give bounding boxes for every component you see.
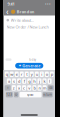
- staticText: v: [28, 85, 30, 90]
- button[interactable]: ⌫: [48, 85, 54, 91]
- staticText: ☺: [15, 93, 18, 96]
- staticText: h: [33, 78, 35, 84]
- button[interactable]: k: [42, 78, 46, 84]
- button[interactable]: o: [45, 72, 49, 77]
- staticText: 9:41: [7, 1, 14, 7]
- staticText: w: [10, 72, 13, 77]
- staticText: r: [21, 72, 23, 77]
- button[interactable]: w: [10, 72, 14, 77]
- staticText: n: [38, 85, 40, 90]
- staticText: space: [27, 93, 34, 96]
- staticText: ⌫: [49, 86, 53, 89]
- button[interactable]: i: [40, 72, 44, 77]
- button[interactable]: q: [5, 72, 9, 77]
- staticText: m: [43, 85, 47, 90]
- button[interactable]: p: [50, 72, 54, 77]
- button[interactable]: d: [17, 78, 21, 84]
- staticText: •••: [45, 1, 51, 7]
- button[interactable]: u: [35, 72, 39, 77]
- staticText: g: [28, 78, 30, 84]
- staticText: New Order / New Lunch: [6, 24, 48, 30]
- staticText: j: [39, 78, 40, 84]
- staticText: q: [6, 72, 8, 77]
- staticText: d: [18, 78, 20, 84]
- button[interactable]: return: [43, 92, 53, 97]
- staticText: x: [18, 85, 20, 90]
- staticText: c: [23, 85, 25, 90]
- button[interactable]: ☺: [14, 92, 18, 97]
- staticText: o: [46, 72, 48, 77]
- staticText: Generate: [22, 63, 40, 68]
- button[interactable]: ⇧: [5, 85, 11, 91]
- button[interactable]: h: [32, 78, 36, 84]
- button[interactable]: r: [20, 72, 24, 77]
- button[interactable]: j: [37, 78, 41, 84]
- button[interactable]: m: [43, 85, 47, 91]
- button[interactable]: f: [22, 78, 26, 84]
- staticText: 123: [6, 93, 12, 96]
- button[interactable]: g: [27, 78, 31, 84]
- staticText: ✦: [18, 63, 21, 68]
- staticText: i: [41, 72, 42, 77]
- button[interactable]: l: [48, 78, 52, 84]
- button[interactable]: e: [15, 72, 19, 77]
- staticText: a: [8, 78, 10, 84]
- button[interactable]: 123: [6, 92, 13, 97]
- staticText: e: [16, 72, 18, 77]
- button[interactable]: b: [32, 85, 36, 91]
- staticText: ⇧: [7, 86, 9, 89]
- staticText: s: [13, 78, 15, 84]
- button[interactable]: Back: [5, 9, 9, 15]
- staticText: l: [49, 78, 50, 84]
- staticText: return: [43, 93, 52, 96]
- staticText: f: [24, 78, 25, 84]
- button[interactable]: space: [20, 92, 42, 97]
- button[interactable]: x: [17, 85, 21, 91]
- staticText: ‹: [6, 6, 9, 17]
- staticText: y: [31, 72, 33, 77]
- button[interactable]: v: [27, 85, 31, 91]
- staticText: k: [43, 78, 45, 84]
- staticText: Today: [29, 58, 36, 61]
- button[interactable]: a: [7, 78, 11, 84]
- staticText: Write about…: [11, 17, 34, 23]
- staticText: u: [36, 72, 38, 77]
- staticText: z: [13, 85, 15, 90]
- button[interactable]: ✦: [15, 63, 43, 68]
- button[interactable]: s: [12, 78, 16, 84]
- staticText: Brandon: [17, 9, 35, 14]
- staticText: b: [33, 85, 35, 90]
- button[interactable]: n: [37, 85, 41, 91]
- button[interactable]: z: [12, 85, 16, 91]
- button[interactable]: y: [30, 72, 34, 77]
- button[interactable]: t: [25, 72, 29, 77]
- staticText: p: [51, 72, 53, 77]
- button[interactable]: c: [22, 85, 26, 91]
- staticText: t: [26, 72, 27, 77]
